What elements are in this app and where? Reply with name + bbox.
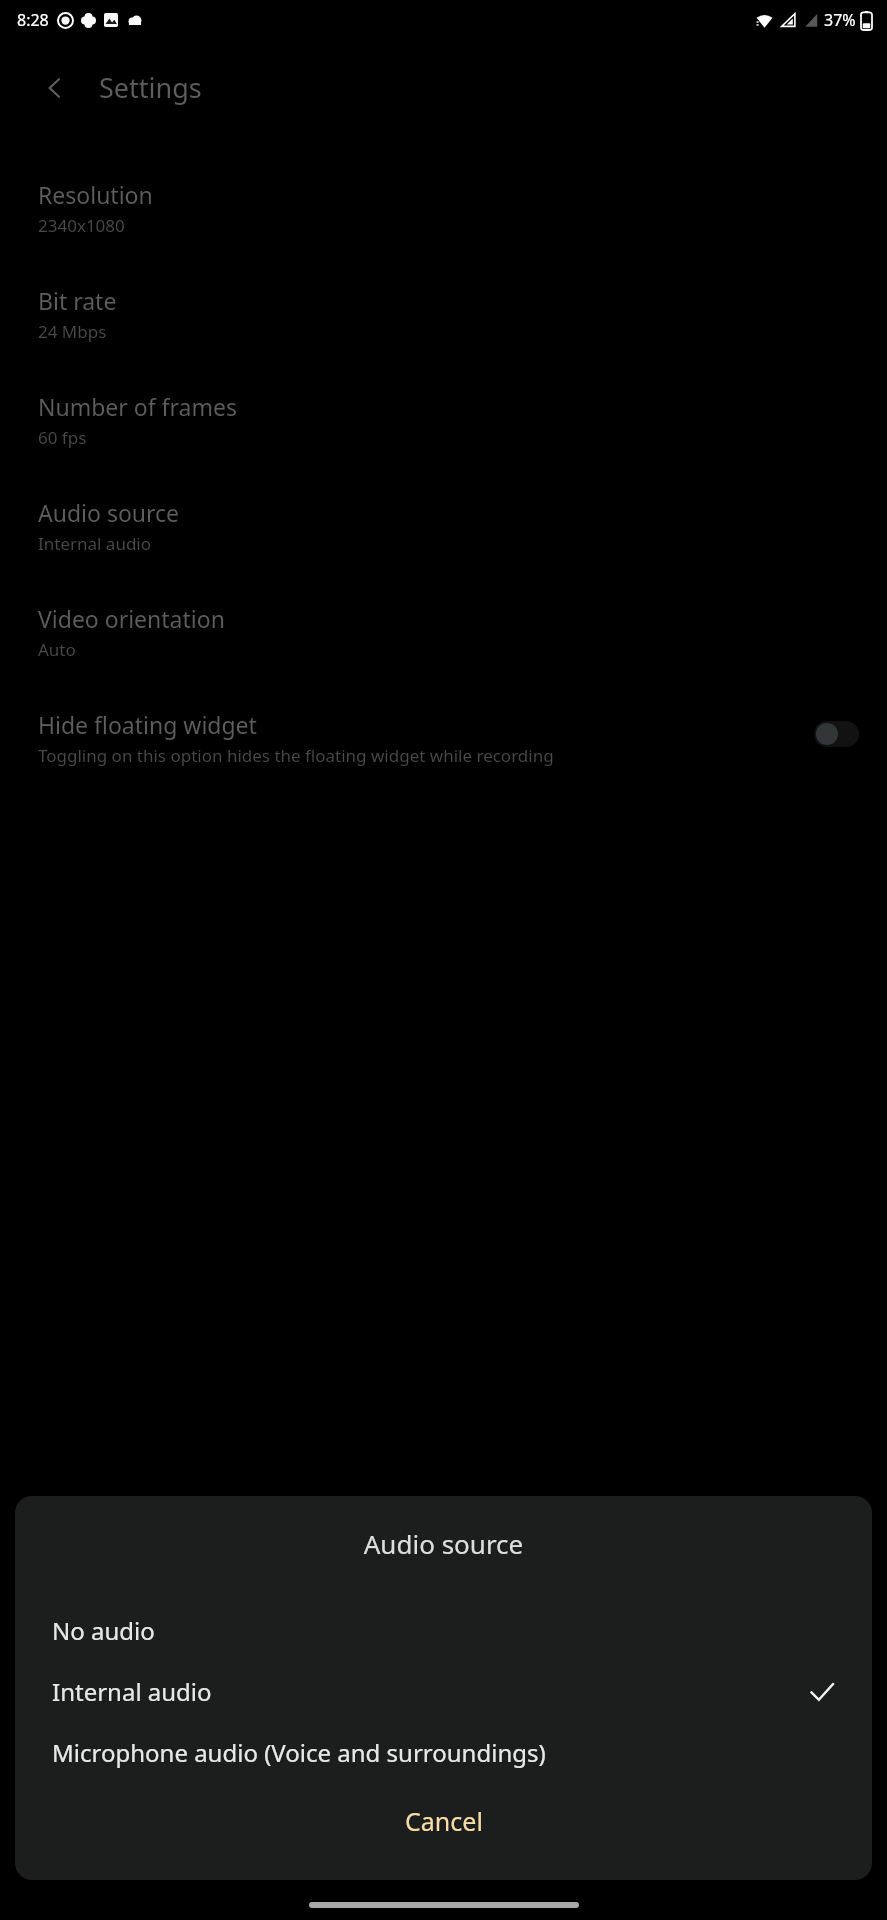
button[interactable]: Video orientation [0, 603, 887, 709]
button[interactable]: Hide floating widget toggle [814, 721, 859, 747]
button[interactable]: Back [0, 40, 887, 135]
staticText: Bit rate [38, 285, 117, 316]
button[interactable]: Bit rate [0, 285, 887, 391]
staticText: Auto [38, 638, 76, 661]
staticText: 37% [824, 9, 856, 31]
staticText: 60 fps [38, 426, 87, 449]
staticText: Video orientation [38, 603, 225, 634]
button[interactable]: Microphone audio (Voice and surroundings… [15, 1722, 872, 1783]
button[interactable]: Audio source [0, 497, 887, 603]
staticText: Internal audio [38, 532, 152, 555]
button[interactable]: Number of frames [0, 391, 887, 497]
staticText: Resolution [38, 179, 153, 210]
staticText: Hide floating widget [38, 709, 257, 740]
button[interactable]: Hide floating widget [0, 709, 887, 767]
staticText: 8:28 [17, 9, 49, 31]
button[interactable]: Cancel [379, 1795, 509, 1847]
staticText: Microphone audio (Voice and surroundings… [52, 1736, 835, 1769]
staticText: Toggling on this option hides the floati… [38, 744, 554, 767]
staticText: No audio [52, 1614, 835, 1647]
staticText: Settings [99, 69, 202, 106]
staticText: 2340x1080 [38, 214, 125, 237]
staticText: 24 Mbps [38, 320, 107, 343]
staticText: Number of frames [38, 391, 237, 422]
button[interactable]: Internal audio [15, 1661, 872, 1722]
button[interactable]: No audio [15, 1600, 872, 1661]
staticText: Internal audio [52, 1675, 797, 1708]
button[interactable]: Resolution [0, 179, 887, 285]
staticText: Audio source [38, 497, 180, 528]
button[interactable]: Back [38, 71, 72, 105]
staticText: Audio source [15, 1526, 872, 1561]
staticText: Cancel [405, 1804, 483, 1838]
